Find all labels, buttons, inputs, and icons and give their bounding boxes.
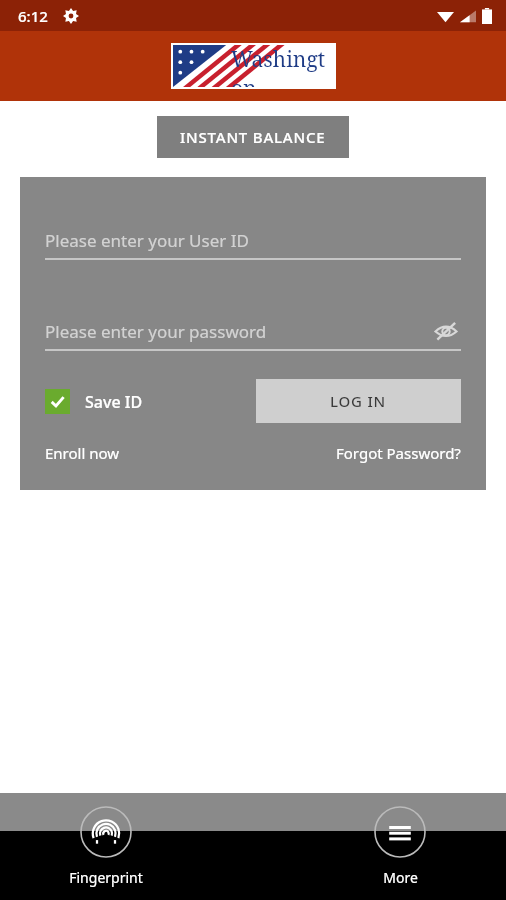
button[interactable]: Save ID — [45, 389, 143, 414]
staticText: Please enter your password — [45, 320, 267, 343]
staticText: Enroll now — [45, 443, 120, 463]
staticText: Save ID — [85, 391, 143, 413]
staticText: Washington — [231, 45, 334, 87]
staticText: Please enter your User ID — [45, 229, 249, 252]
button[interactable]: LOG IN — [256, 379, 461, 423]
button[interactable]: Fingerprint login — [51, 793, 161, 887]
staticText: 6:12 — [18, 6, 48, 26]
button[interactable]: INSTANT BALANCE — [157, 116, 349, 158]
staticText: More — [383, 868, 418, 887]
button[interactable]: Show password — [431, 316, 461, 346]
button[interactable]: Please enter your password — [45, 313, 461, 349]
staticText: Forgot Password? — [336, 443, 461, 463]
button[interactable]: Forgot Password? — [336, 443, 461, 463]
staticText: INSTANT BALANCE — [180, 127, 326, 147]
staticText: Fingerprint — [69, 868, 143, 887]
staticText: LOG IN — [330, 391, 387, 411]
button[interactable]: More options — [345, 793, 455, 887]
button[interactable]: Enroll now — [45, 443, 120, 463]
button[interactable]: Please enter your User ID — [45, 222, 461, 258]
